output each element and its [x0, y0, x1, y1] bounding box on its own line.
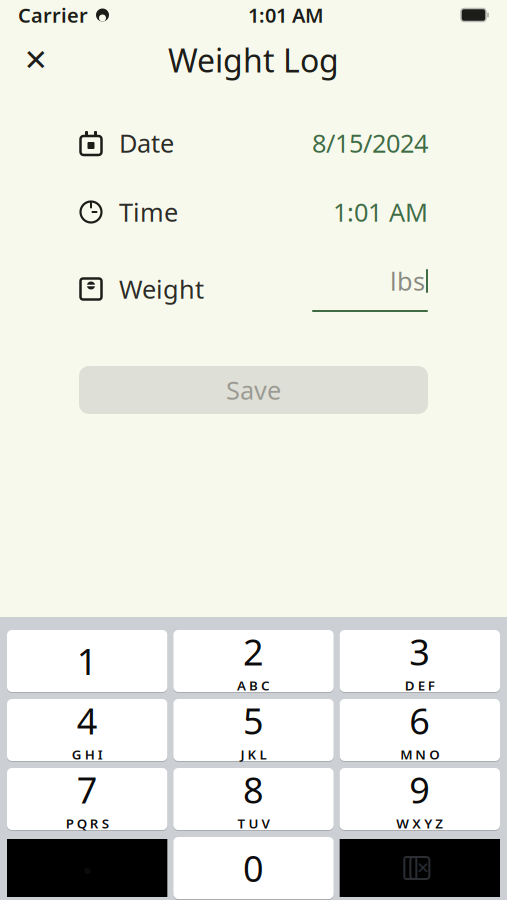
- staticText: .: [82, 836, 92, 884]
- staticText: T U V: [237, 815, 269, 832]
- staticText: 8: [243, 766, 264, 813]
- staticText: M N O: [400, 746, 439, 763]
- staticText: 2: [243, 628, 264, 675]
- staticText: 1: [77, 637, 98, 685]
- staticText: 0: [243, 844, 264, 892]
- staticText: 4: [77, 697, 98, 744]
- staticText: D E F: [405, 677, 435, 694]
- button[interactable]: lbs: [312, 266, 428, 312]
- staticText: Time: [119, 195, 178, 229]
- staticText: ✕: [23, 43, 48, 77]
- button[interactable]: 8/15/2024: [312, 126, 428, 160]
- staticText: Weight Log: [168, 39, 339, 81]
- staticText: 1:01 AM: [248, 2, 324, 28]
- staticText: Carrier: [18, 2, 88, 28]
- staticText: J K L: [240, 746, 266, 763]
- button[interactable]: 3: [340, 629, 500, 692]
- button[interactable]: 1:01 AM: [333, 195, 428, 229]
- button[interactable]: 8: [173, 767, 334, 830]
- button[interactable]: 6: [340, 698, 500, 761]
- button[interactable]: 0: [173, 836, 334, 899]
- staticText: ✕: [416, 859, 429, 877]
- button[interactable]: 1: [7, 629, 167, 692]
- staticText: 1:01 AM: [333, 195, 428, 229]
- button[interactable]: Save: [79, 366, 428, 414]
- button[interactable]: 5: [173, 698, 334, 761]
- button[interactable]: 9: [340, 767, 500, 830]
- staticText: 8/15/2024: [312, 126, 428, 160]
- staticText: A B C: [237, 677, 270, 694]
- button[interactable]: 7: [7, 767, 167, 830]
- staticText: 5: [243, 697, 264, 744]
- button[interactable]: Close: [21, 45, 51, 75]
- button[interactable]: 4: [7, 698, 167, 761]
- button[interactable]: 2: [173, 629, 334, 692]
- staticText: 3: [409, 628, 430, 675]
- staticText: G H I: [72, 746, 103, 763]
- staticText: Save: [226, 373, 281, 407]
- staticText: 6: [409, 697, 430, 744]
- staticText: W X Y Z: [396, 815, 443, 832]
- staticText: P Q R S: [66, 815, 109, 832]
- button[interactable]: Delete: [340, 839, 500, 897]
- staticText: lbs: [390, 264, 425, 298]
- staticText: Date: [119, 126, 174, 160]
- staticText: 7: [77, 766, 98, 813]
- staticText: Weight: [119, 272, 204, 306]
- staticText: 9: [409, 766, 430, 813]
